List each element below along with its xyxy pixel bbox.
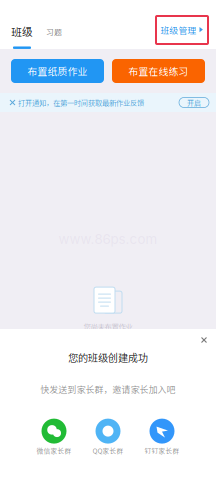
staticText: 开启 <box>187 97 201 108</box>
staticText: 布置在线练习 <box>128 64 188 78</box>
staticText: 钉钉家长群 <box>144 446 179 455</box>
button[interactable]: 布置纸质作业 <box>11 59 104 83</box>
button[interactable]: QQ家长群 <box>81 419 135 455</box>
staticText: 微信家长群 <box>36 446 71 455</box>
staticText: 您尚未布置作业 <box>83 321 132 332</box>
button[interactable]: 开启 <box>179 97 209 107</box>
staticText: 快发送到家长群，邀请家长加入吧 <box>40 383 175 396</box>
staticText: 班级 <box>11 24 33 39</box>
staticText: 习题 <box>46 26 62 37</box>
staticText: 您的班级创建成功 <box>68 350 148 365</box>
button[interactable]: 关闭 <box>192 329 216 351</box>
staticText: 打开通知，在第一时间获取最新作业反馈 <box>18 97 144 108</box>
staticText: QQ家长群 <box>92 446 123 455</box>
button[interactable]: 微信家长群 <box>27 419 81 455</box>
button[interactable]: 布置在线练习 <box>112 59 205 83</box>
staticText: 班级管理 <box>160 23 196 36</box>
staticText: www.86ps.com <box>58 231 157 247</box>
button[interactable]: 钉钉家长群 <box>135 419 189 455</box>
staticText: 布置纸质作业 <box>27 64 87 78</box>
button[interactable]: 关闭通知提醒 <box>0 93 18 112</box>
button[interactable]: 班级管理 <box>156 16 208 44</box>
